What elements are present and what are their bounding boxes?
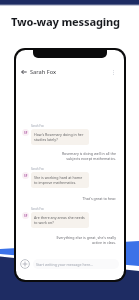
staticText: Sarah Fox — [31, 124, 44, 128]
staticText: Start writing your message here... — [36, 262, 94, 267]
staticText: Two-way messaging — [11, 14, 120, 29]
staticText: Sarah Fox — [30, 68, 56, 76]
staticText: SF — [24, 174, 28, 178]
button[interactable]: She is working hard at home to improve m… — [31, 172, 89, 188]
staticText: She is working hard at home to improve m… — [34, 175, 86, 185]
button[interactable]: That's great to hear. — [54, 196, 116, 201]
staticText: Are there any areas she needs to work on… — [34, 215, 86, 225]
button[interactable]: Rosemary is doing well in all the subjec… — [54, 151, 116, 161]
button[interactable]: Add attachment — [20, 259, 30, 269]
staticText: That's great to hear. — [54, 196, 116, 201]
button[interactable]: How's Rosemary doing in her studies late… — [31, 129, 89, 145]
staticText: Rosemary is doing well in all the subjec… — [54, 151, 116, 161]
button[interactable]: Everything else is great, she's really a… — [54, 235, 116, 245]
staticText: How's Rosemary doing in her studies late… — [34, 132, 86, 142]
staticText: SF — [24, 131, 28, 135]
other: Back — [21, 69, 27, 75]
staticText: Sarah Fox — [31, 207, 44, 211]
staticText: SF — [24, 214, 28, 218]
button[interactable]: Are there any areas she needs to work on… — [31, 212, 89, 228]
staticText: Everything else is great, she's really a… — [54, 235, 116, 245]
button[interactable]: Start writing your message here... — [33, 259, 119, 269]
button[interactable]: Back — [16, 66, 124, 78]
staticText: Sarah Fox — [31, 167, 44, 171]
button[interactable]: More options — [109, 68, 118, 77]
